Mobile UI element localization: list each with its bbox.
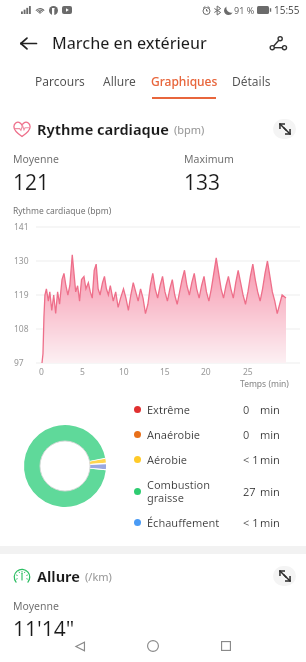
button[interactable]: Back [12, 27, 44, 59]
staticText: 5 [80, 366, 85, 378]
staticText: 0 [243, 402, 260, 417]
staticText: Graphiques [151, 73, 218, 89]
staticText: 20 [201, 366, 211, 378]
staticText: Échauffement [147, 515, 237, 530]
staticText: Allure [37, 566, 80, 586]
button[interactable]: Détails [223, 66, 279, 99]
staticText: Extrême [147, 402, 237, 417]
staticText: 27 [243, 484, 260, 499]
staticText: Marche en extérieur [52, 32, 207, 54]
button[interactable]: Recents [213, 633, 239, 659]
staticText: Temps (min) [240, 378, 289, 390]
staticText: Rythme cardiaque (bpm) [13, 205, 112, 217]
staticText: Allure [103, 73, 136, 89]
staticText: Moyenne [13, 599, 59, 613]
staticText: 11'14" [13, 615, 75, 636]
staticText: 97 [14, 357, 24, 369]
staticText: 15:55 [274, 3, 300, 17]
staticText: (bpm) [174, 122, 205, 137]
staticText: 133 [184, 168, 221, 197]
staticText: 25 [243, 366, 253, 378]
staticText: < 1 [243, 515, 260, 530]
button[interactable]: Back [67, 633, 93, 659]
staticText: 0 [39, 366, 44, 378]
staticText: min [260, 452, 280, 467]
staticText: 108 [14, 323, 29, 335]
staticText: min [260, 402, 280, 417]
staticText: Moyenne [13, 152, 59, 166]
button[interactable]: Home [140, 633, 166, 659]
staticText: (/km) [85, 569, 112, 584]
button[interactable]: Expand pace chart [273, 566, 296, 586]
button[interactable]: Graphiques [145, 66, 223, 99]
staticText: < 1 [243, 452, 260, 467]
staticText: 91 % [234, 4, 255, 16]
button[interactable]: Share [262, 27, 294, 59]
staticText: Anaérobie [147, 427, 237, 442]
staticText: Rythme cardiaque [37, 119, 169, 139]
staticText: Aérobie [147, 452, 237, 467]
staticText: 15 [160, 366, 170, 378]
staticText: 141 [14, 221, 29, 233]
button[interactable]: Expand heart rate chart [273, 119, 296, 139]
staticText: Maximum [184, 152, 234, 166]
staticText: 0 [243, 427, 260, 442]
staticText: Combustion graisse [147, 477, 237, 505]
button[interactable]: Allure [93, 66, 145, 99]
staticText: 121 [13, 168, 50, 197]
staticText: Parcours [35, 73, 85, 89]
staticText: 130 [14, 255, 29, 267]
staticText: min [260, 484, 280, 499]
staticText: min [260, 515, 280, 530]
staticText: min [260, 427, 280, 442]
staticText: Détails [232, 73, 271, 89]
staticText: 119 [14, 289, 29, 301]
staticText: 10 [119, 366, 129, 378]
button[interactable]: Parcours [27, 66, 93, 99]
